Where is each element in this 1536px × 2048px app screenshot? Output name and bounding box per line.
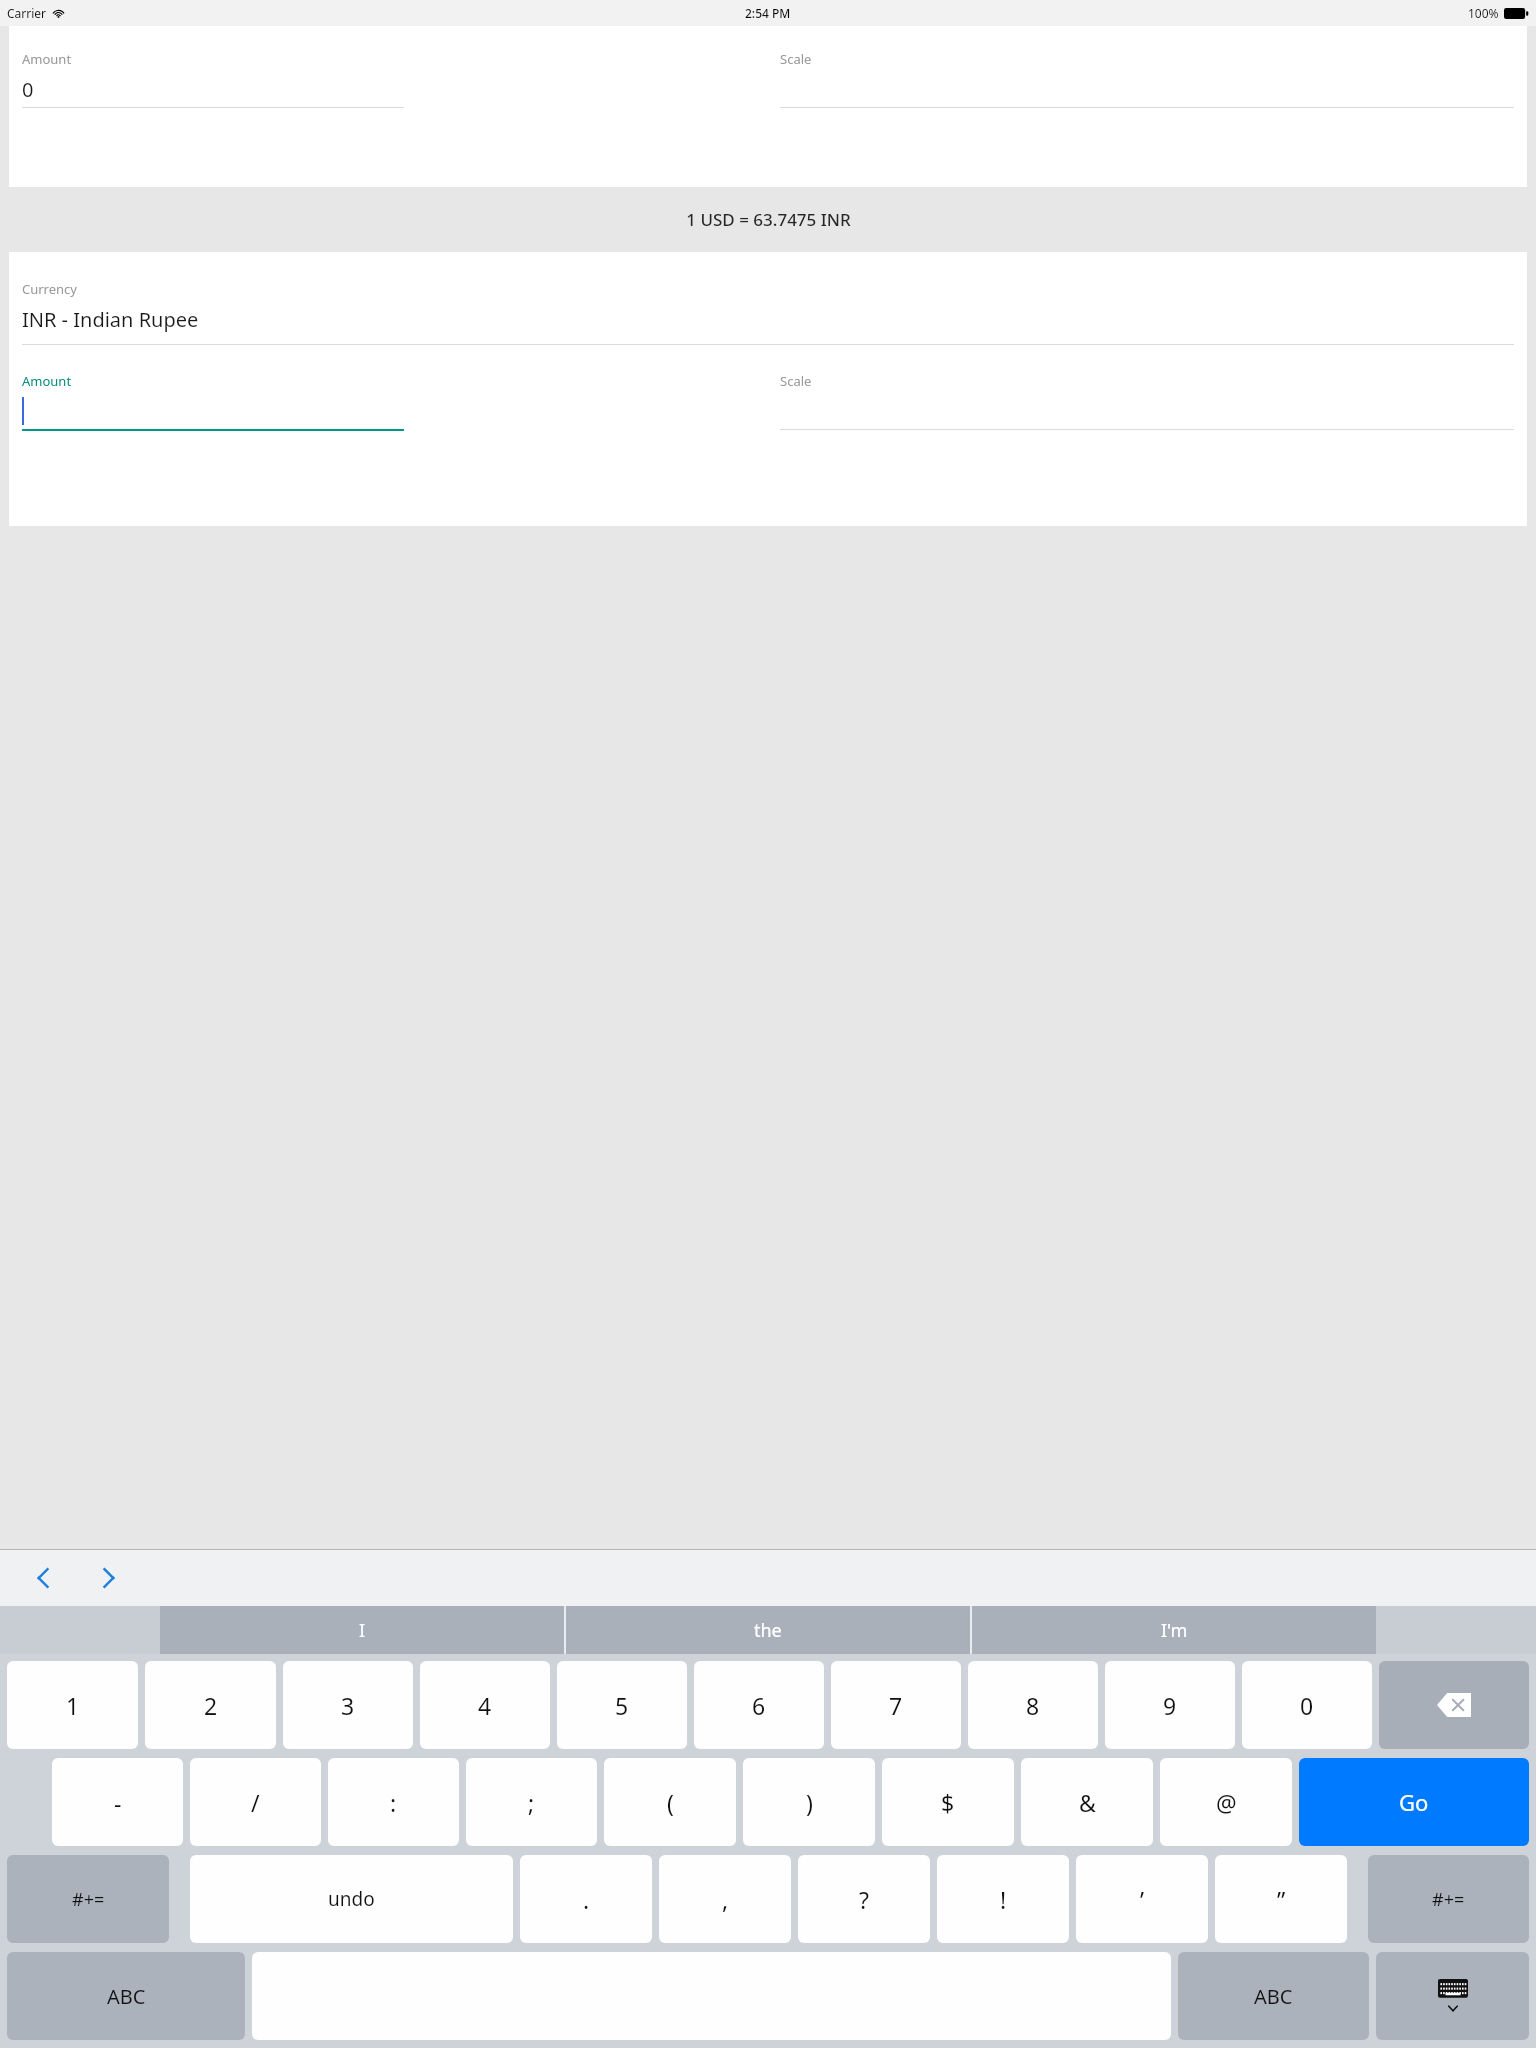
button[interactable]: ABC xyxy=(7,1952,245,2040)
button[interactable]: Scale xyxy=(780,372,1514,430)
button[interactable]: #+= xyxy=(1368,1855,1529,1943)
staticText: ’ xyxy=(1140,1884,1145,1915)
staticText: @ xyxy=(1216,1787,1237,1818)
button[interactable]: ’ xyxy=(1076,1855,1208,1943)
staticText: ; xyxy=(528,1787,535,1818)
staticText: - xyxy=(114,1787,122,1818)
button[interactable]: ABC xyxy=(1178,1952,1369,2040)
button[interactable]: , xyxy=(659,1855,791,1943)
button[interactable]: ? xyxy=(798,1855,930,1943)
staticText: ? xyxy=(859,1884,869,1915)
staticText: #+= xyxy=(72,1887,105,1912)
button[interactable]: I xyxy=(160,1606,564,1654)
button[interactable]: . xyxy=(520,1855,652,1943)
button[interactable]: ) xyxy=(743,1758,875,1846)
button[interactable]: & xyxy=(1021,1758,1153,1846)
staticText: 2 xyxy=(204,1690,218,1721)
staticText: 0 xyxy=(22,76,34,103)
button[interactable]: Amount xyxy=(22,50,756,108)
staticText: : xyxy=(390,1787,397,1818)
staticText: Go xyxy=(1399,1787,1429,1817)
staticText: 1 USD = 63.7475 INR xyxy=(686,208,851,231)
button[interactable]: $ xyxy=(882,1758,1014,1846)
button[interactable]: ! xyxy=(937,1855,1069,1943)
staticText: ) xyxy=(806,1787,813,1818)
staticText: 2:54 PM xyxy=(745,5,791,21)
staticText: 8 xyxy=(1026,1690,1040,1721)
button[interactable]: 0 xyxy=(1242,1661,1372,1749)
button[interactable]: Scale xyxy=(780,50,1514,108)
button[interactable]: 8 xyxy=(968,1661,1098,1749)
staticText: Carrier xyxy=(7,5,47,21)
staticText: ! xyxy=(1000,1884,1007,1915)
staticText: undo xyxy=(328,1886,375,1912)
staticText: ( xyxy=(667,1787,674,1818)
button[interactable]: 1 xyxy=(7,1661,138,1749)
button[interactable]: 2 xyxy=(145,1661,276,1749)
staticText: Scale xyxy=(780,50,812,68)
button[interactable]: ; xyxy=(466,1758,597,1846)
staticText: I xyxy=(359,1618,366,1643)
button[interactable]: : xyxy=(328,1758,459,1846)
staticText: 9 xyxy=(1163,1690,1177,1721)
button[interactable]: #+= xyxy=(7,1855,169,1943)
staticText: 0 xyxy=(1300,1690,1314,1721)
staticText: Amount xyxy=(22,372,72,390)
staticText: I'm xyxy=(1161,1618,1188,1643)
staticText: 6 xyxy=(752,1690,766,1721)
staticText: , xyxy=(722,1884,729,1915)
staticText: / xyxy=(251,1787,260,1818)
button[interactable]: Hide keyboard xyxy=(1376,1952,1529,2040)
button[interactable]: - xyxy=(52,1758,183,1846)
staticText: INR - Indian Rupee xyxy=(22,306,199,333)
button[interactable]: the xyxy=(566,1606,970,1654)
staticText: ” xyxy=(1277,1884,1286,1915)
button[interactable]: Previous field xyxy=(22,1556,66,1600)
staticText: . xyxy=(583,1884,590,1915)
button[interactable]: Next field xyxy=(86,1556,130,1600)
staticText: ABC xyxy=(107,1983,146,2010)
button[interactable]: 3 xyxy=(283,1661,413,1749)
staticText: 100% xyxy=(1468,5,1499,21)
button[interactable]: 6 xyxy=(694,1661,824,1749)
button[interactable]: 5 xyxy=(557,1661,687,1749)
staticText: 5 xyxy=(615,1690,629,1721)
staticText: ABC xyxy=(1254,1983,1293,2010)
button[interactable]: @ xyxy=(1160,1758,1292,1846)
button[interactable]: / xyxy=(190,1758,321,1846)
staticText: the xyxy=(754,1618,782,1643)
button[interactable]: 7 xyxy=(831,1661,961,1749)
button[interactable]: I'm xyxy=(972,1606,1376,1654)
staticText: & xyxy=(1079,1787,1096,1818)
button[interactable]: Backspace xyxy=(1379,1661,1529,1749)
button[interactable]: 9 xyxy=(1105,1661,1235,1749)
button[interactable]: undo xyxy=(190,1855,513,1943)
staticText: 3 xyxy=(341,1690,355,1721)
staticText: $ xyxy=(941,1787,955,1818)
button[interactable]: 4 xyxy=(420,1661,550,1749)
staticText: 1 xyxy=(66,1690,80,1721)
staticText: 4 xyxy=(478,1690,492,1721)
staticText: 7 xyxy=(889,1690,903,1721)
button[interactable]: Go xyxy=(1299,1758,1529,1846)
staticText: Scale xyxy=(780,372,812,390)
staticText: Amount xyxy=(22,50,72,68)
button[interactable]: ( xyxy=(604,1758,736,1846)
button[interactable]: ” xyxy=(1215,1855,1347,1943)
staticText: Currency xyxy=(22,280,77,298)
button[interactable]: Currency xyxy=(22,280,1514,345)
button[interactable]: Amount xyxy=(22,372,756,431)
staticText: #+= xyxy=(1432,1887,1465,1912)
